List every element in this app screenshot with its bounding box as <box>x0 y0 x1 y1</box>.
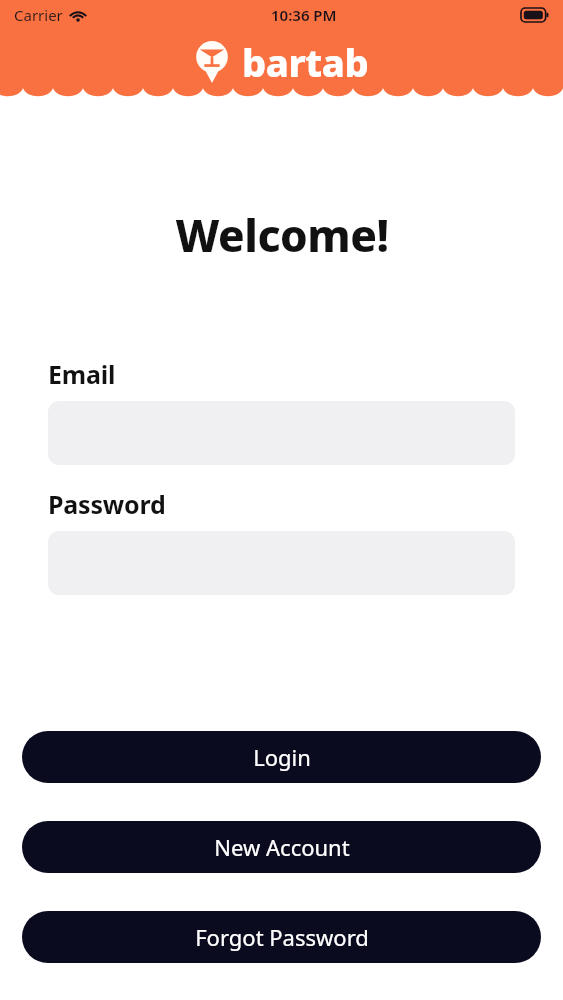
staticText: New Account <box>214 832 350 862</box>
staticText: Login <box>253 742 311 772</box>
staticText: Email <box>48 357 116 391</box>
staticText: 10:36 PM <box>271 5 337 25</box>
button[interactable]: Forgot Password <box>22 911 541 963</box>
button[interactable]: New Account <box>22 821 541 873</box>
other: bartab logo <box>194 40 230 84</box>
staticText: Password <box>48 487 166 521</box>
staticText: Forgot Password <box>195 922 369 952</box>
staticText: Welcome! <box>175 205 389 265</box>
button[interactable]: Login <box>22 731 541 783</box>
staticText: Carrier <box>14 5 63 25</box>
staticText: bartab <box>242 36 369 88</box>
